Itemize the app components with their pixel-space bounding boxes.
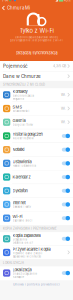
staticText: urządzenia: [12, 238, 26, 241]
button[interactable]: Pojemność: [0, 61, 73, 72]
button[interactable]: Galeria: [0, 116, 73, 129]
staticText: KOPIA ZAPASOWA I PRZYWRACANIE: [3, 227, 57, 230]
button[interactable]: Dane w Chmurze: [0, 72, 73, 81]
staticText: włączona: [12, 97, 23, 100]
staticText: Pojemność: [3, 63, 28, 69]
staticText: Przywróć dane z kopii: [12, 252, 42, 255]
staticText: Umowa i polityka prywatności: [13, 283, 60, 286]
staticText: Lokalizacja: [12, 267, 31, 272]
staticText: Wiadomości: [12, 109, 29, 113]
staticText: SYNCHRONIZUJ Z MI CLOUD: [3, 83, 45, 86]
staticText: Kontakty: [12, 89, 27, 94]
button[interactable]: Historia połączeń: [0, 129, 73, 143]
button[interactable]: Zarządzaj synchronizacją: [0, 50, 73, 56]
staticText: Tylko z Wi-Fi: [19, 27, 53, 34]
button[interactable]: Ustawienia: [0, 157, 73, 170]
staticText: Zdjęcia i filmy: [12, 123, 32, 126]
staticText: Synchronizacja: [12, 94, 33, 97]
staticText: Wł.: [61, 107, 66, 110]
staticText: Ostatnia: 09.07: [12, 241, 33, 244]
staticText: SMS: [12, 104, 22, 109]
staticText: zapasowej w chmurze: [12, 255, 41, 258]
staticText: Znajdź urządzenie: [12, 272, 37, 275]
staticText: Galeria: [12, 118, 25, 123]
staticText: Kopia zapasowa: [12, 233, 40, 238]
staticText: Zakładki i karty: [12, 205, 30, 208]
button[interactable]: Kontakty: [0, 88, 73, 102]
staticText: Wł.: [61, 93, 66, 97]
staticText: Rejestr rozmów: [12, 137, 33, 140]
staticText: Kalendarz: [12, 175, 30, 179]
button[interactable]: Notatki: [0, 143, 73, 157]
staticText: Internet: [12, 200, 25, 205]
button[interactable]: Umowa i polityka prywatności: [0, 280, 73, 286]
staticText: 43%: [64, 0, 71, 2]
button[interactable]: Internet: [0, 198, 73, 211]
button[interactable]: SMS: [0, 102, 73, 116]
staticText: Synchronizacja działa tylko wtedy,: [14, 36, 58, 39]
staticText: Wi-Fi: [12, 214, 22, 219]
staticText: LOKALIZACJA: [3, 261, 24, 265]
staticText: 7:14: [2, 0, 8, 2]
staticText: Chmura Mi: [7, 5, 30, 11]
staticText: na mapie: [12, 275, 24, 279]
staticText: Historia połączeń: [12, 132, 42, 137]
button[interactable]: Wstecz: [0, 3, 7, 12]
staticText: Dane w Chmurze: [3, 74, 41, 79]
button[interactable]: Lokalizacja: [0, 266, 73, 280]
staticText: gdy urządzenie jest połączone z Wi-Fi: [10, 39, 63, 42]
staticText: Wł.: [61, 120, 66, 124]
button[interactable]: Kalendarz: [0, 170, 73, 184]
button[interactable]: Przywracanie i Kopia: [0, 246, 73, 259]
button[interactable]: Dyktafon: [0, 184, 73, 198]
staticText: Zapisane sieci: [12, 219, 32, 222]
staticText: 4,3/5 GB: [53, 64, 66, 68]
staticText: Notatki: [12, 147, 24, 152]
staticText: Ustawienia: [12, 159, 31, 164]
staticText: Zarządzaj synchronizacją: [15, 51, 57, 55]
button[interactable]: Wi-Fi: [0, 211, 73, 225]
staticText: Hasła i ustawienia: [12, 164, 35, 167]
button[interactable]: Kopia zapasowa: [0, 232, 73, 246]
staticText: Przywracanie i Kopia: [12, 247, 50, 252]
staticText: Dyktafon: [12, 188, 27, 193]
